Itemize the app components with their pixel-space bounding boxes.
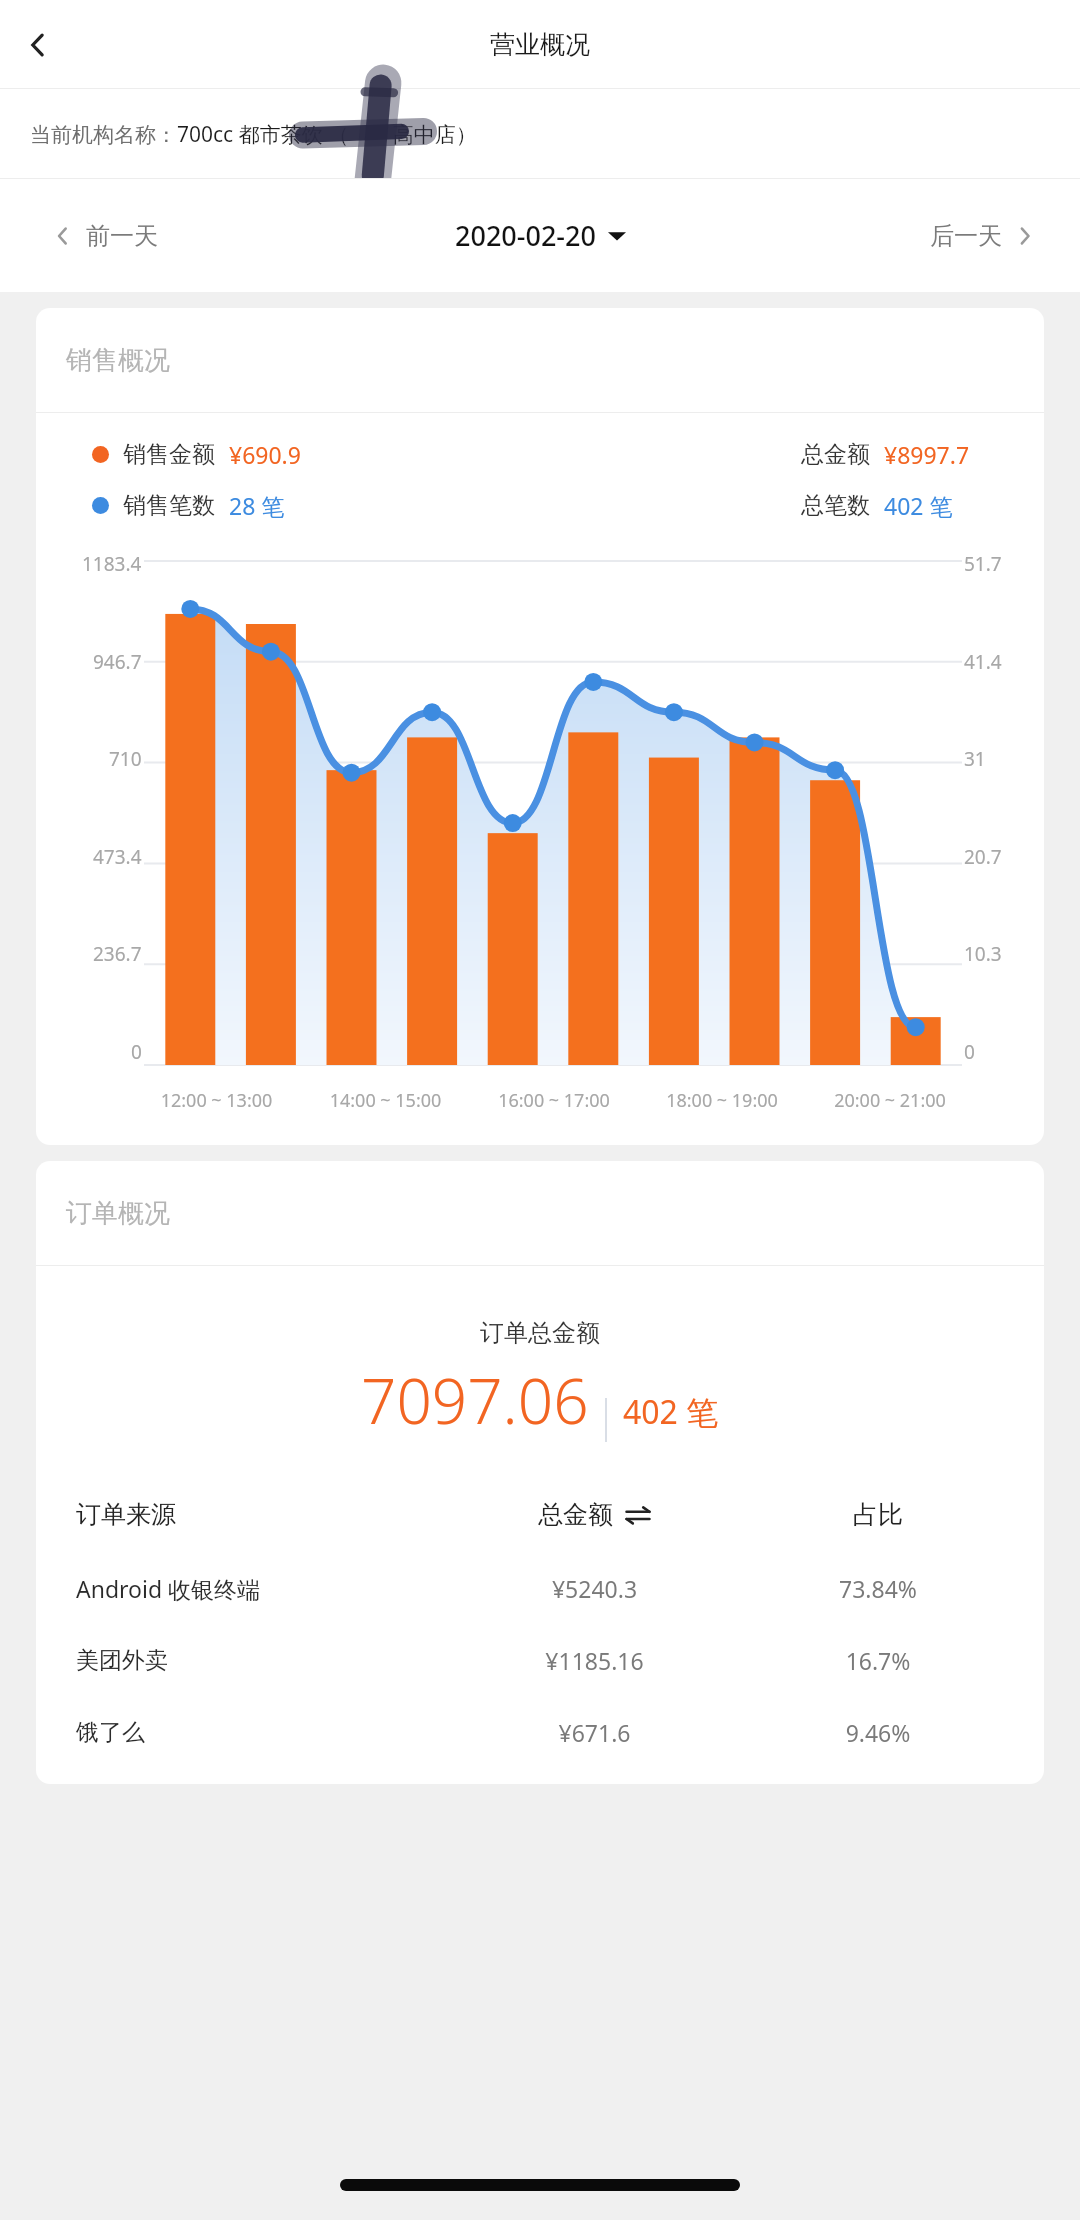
- button[interactable]: 总金额: [437, 1499, 752, 1530]
- staticText: 饿了么: [76, 1718, 437, 1747]
- button[interactable]: 美团外卖: [36, 1624, 1044, 1696]
- staticText: 41.4: [964, 649, 1002, 675]
- staticText: 28 笔: [229, 490, 285, 521]
- staticText: 16:00 ~ 17:00: [470, 1088, 638, 1113]
- staticText: 10.3: [964, 941, 1002, 967]
- other: Sort: [625, 1505, 651, 1525]
- staticText: 9.46%: [752, 1717, 1004, 1748]
- staticText: 0: [131, 1039, 142, 1065]
- staticText: 12:00 ~ 13:00: [132, 1088, 301, 1113]
- button[interactable]: 2020-02-20: [455, 217, 626, 254]
- staticText: 7097.06: [361, 1358, 589, 1442]
- staticText: ¥5240.3: [437, 1573, 752, 1604]
- button[interactable]: 后一天: [930, 221, 1036, 251]
- staticText: ¥8997.7: [884, 439, 1004, 470]
- staticText: 订单来源: [76, 1499, 437, 1530]
- staticText: 946.7: [93, 649, 142, 675]
- button[interactable]: Back: [10, 17, 66, 73]
- staticText: 当前机构名称：: [30, 122, 177, 148]
- staticText: 473.4: [93, 844, 142, 870]
- staticText: 20:00 ~ 21:00: [806, 1088, 974, 1113]
- staticText: Android 收银终端: [76, 1573, 437, 1604]
- staticText: 710: [109, 746, 142, 772]
- staticText: 51.7: [964, 551, 1002, 577]
- staticText: 总笔数: [801, 491, 870, 520]
- staticText: 402 笔: [623, 1390, 719, 1434]
- staticText: 占比: [752, 1499, 1004, 1530]
- staticText: 美团外卖: [76, 1646, 437, 1675]
- staticText: 73.84%: [752, 1573, 1004, 1604]
- staticText: 营业概况: [490, 29, 590, 60]
- staticText: 后一天: [930, 221, 1002, 251]
- staticText: 0: [964, 1039, 975, 1065]
- staticText: 700cc 都市茶饮 （ 高中店）: [177, 120, 477, 149]
- staticText: 20.7: [964, 844, 1002, 870]
- staticText: 31: [964, 746, 986, 772]
- staticText: 订单概况: [66, 1197, 170, 1230]
- staticText: 2020-02-20: [455, 217, 596, 254]
- staticText: 16.7%: [752, 1645, 1004, 1676]
- staticText: 402 笔: [884, 490, 1004, 521]
- staticText: 销售金额: [123, 440, 215, 469]
- staticText: ¥690.9: [229, 439, 301, 470]
- staticText: 1183.4: [82, 551, 142, 577]
- staticText: ¥671.6: [437, 1717, 752, 1748]
- button[interactable]: 前一天: [52, 221, 158, 251]
- staticText: 236.7: [93, 941, 142, 967]
- staticText: 前一天: [86, 221, 158, 251]
- staticText: 销售概况: [66, 344, 170, 377]
- staticText: ¥1185.16: [437, 1645, 752, 1676]
- staticText: 订单总金额: [36, 1318, 1044, 1348]
- staticText: 总金额: [801, 440, 870, 469]
- staticText: 18:00 ~ 19:00: [638, 1088, 806, 1113]
- staticText: 销售笔数: [123, 491, 215, 520]
- staticText: 14:00 ~ 15:00: [301, 1088, 470, 1113]
- button[interactable]: Android 收银终端: [36, 1552, 1044, 1624]
- button[interactable]: 饿了么: [36, 1696, 1044, 1768]
- staticText: 总金额: [538, 1499, 613, 1530]
